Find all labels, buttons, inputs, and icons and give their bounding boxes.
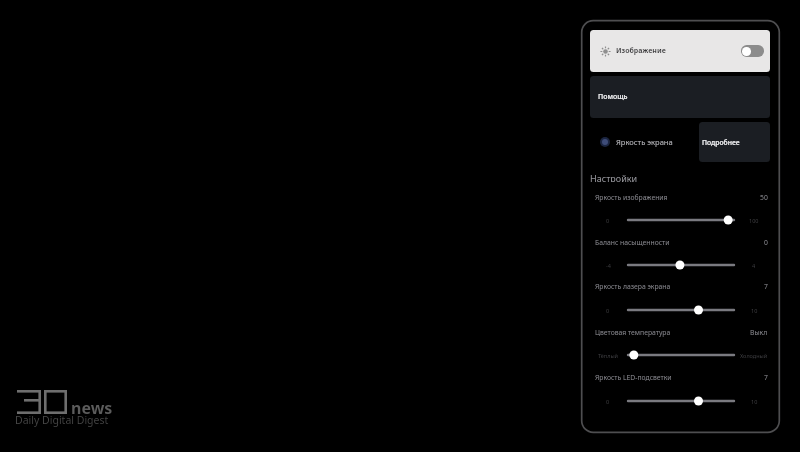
staticText: Помощь [598,92,628,102]
button[interactable]: Баланс насыщенности [628,259,734,271]
button[interactable]: Подробнее [699,122,770,162]
button[interactable]: Яркость лазера экрана [595,281,768,291]
button[interactable]: Яркость лазера экрана [628,304,734,316]
staticText: Тёплый [598,352,619,359]
button[interactable]: Яркость изображения [595,192,768,202]
button[interactable]: Яркость экрана [590,122,698,162]
button[interactable]: Помощь [590,76,770,118]
staticText: 10 [751,307,758,314]
button[interactable]: Яркость LED-подсветки [595,372,768,382]
staticText: Выкл [750,328,768,337]
staticText: 0 [606,307,610,314]
button[interactable]: Яркость изображения [628,214,734,226]
staticText: 50 [760,193,768,202]
staticText: Подробнее [702,138,740,147]
staticText: Настройки [590,172,638,182]
button[interactable]: Яркость LED-подсветки [628,395,734,407]
staticText: 4 [752,262,756,269]
button[interactable]: Цветовая температура [628,349,734,361]
staticText: 10 [751,398,758,405]
staticText: Яркость лазера экрана [595,282,671,291]
button[interactable]: Переключатель изображения [741,45,764,57]
staticText: 0 [606,398,610,405]
staticText: Яркость LED-подсветки [595,373,672,382]
staticText: 7 [764,282,768,291]
button[interactable]: Баланс насыщенности [595,237,768,247]
button[interactable]: Изображение [590,30,770,72]
staticText: Яркость экрана [616,137,673,147]
staticText: Баланс насыщенности [595,238,670,247]
staticText: 0 [606,217,610,224]
button[interactable]: Цветовая температура [595,327,768,337]
staticText: -4 [606,262,611,269]
button[interactable]: 3DNews [15,388,119,426]
staticText: 0 [764,238,768,247]
staticText: 7 [764,373,768,382]
staticText: Daily Digital Digest [15,413,109,427]
staticText: Цветовая температура [595,328,671,337]
staticText: 100 [749,217,759,224]
staticText: Холодный [740,352,768,359]
staticText: news [71,397,113,419]
staticText: Изображение [616,46,666,56]
staticText: Яркость изображения [595,193,668,202]
